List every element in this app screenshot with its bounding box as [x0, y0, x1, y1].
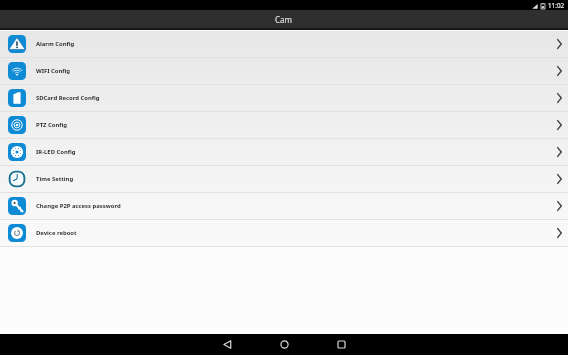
- staticText: Time Setting: [36, 175, 74, 183]
- staticText: Cam: [275, 14, 293, 25]
- staticText: PTZ Config: [36, 121, 68, 129]
- button[interactable]: Device reboot: [0, 220, 568, 247]
- button[interactable]: WIFI Config: [0, 58, 568, 85]
- button[interactable]: Back: [199, 334, 256, 355]
- button[interactable]: SDCard Record Config: [0, 85, 568, 112]
- staticText: 11:02: [548, 1, 565, 10]
- button[interactable]: Alarm Config: [0, 31, 568, 58]
- staticText: Alarm Config: [36, 40, 75, 48]
- button[interactable]: PTZ Config: [0, 112, 568, 139]
- button[interactable]: IR-LED Config: [0, 139, 568, 166]
- staticText: Change P2P access password: [36, 202, 121, 210]
- staticText: SDCard Record Config: [36, 94, 100, 102]
- button[interactable]: Recents: [313, 334, 370, 355]
- staticText: WIFI Config: [36, 67, 71, 75]
- button[interactable]: Time Setting: [0, 166, 568, 193]
- staticText: Device reboot: [36, 229, 77, 237]
- button[interactable]: Home: [256, 334, 313, 355]
- button[interactable]: Change P2P access password: [0, 193, 568, 220]
- staticText: IR-LED Config: [36, 148, 76, 156]
